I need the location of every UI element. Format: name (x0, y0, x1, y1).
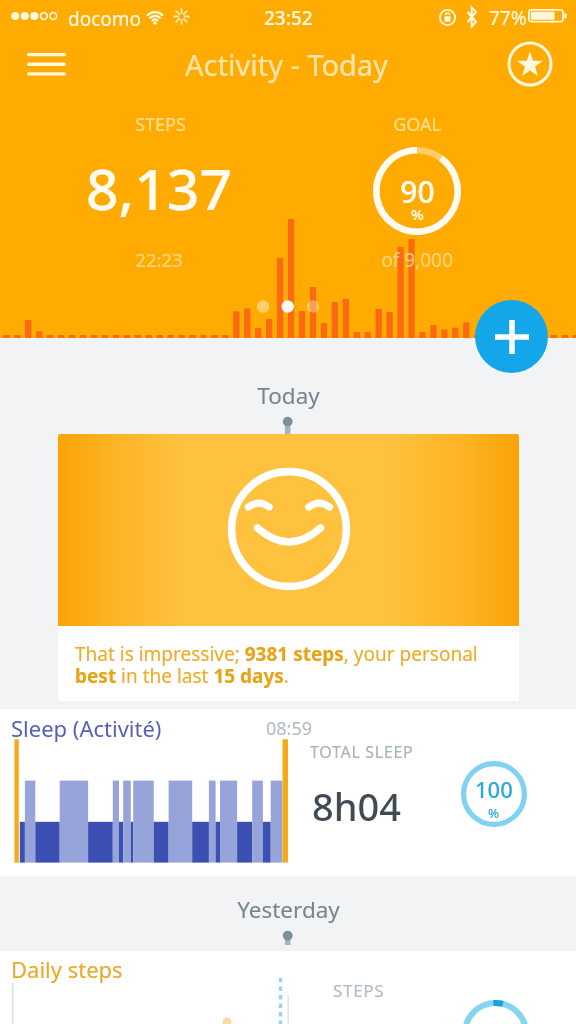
staticText: 08:59 (266, 716, 313, 741)
staticText: STEPS (135, 112, 186, 137)
staticText: 90 (400, 171, 435, 212)
staticText: TOTAL SLEEP (310, 741, 414, 763)
button[interactable]: Sleep (Activité) (0, 709, 576, 876)
staticText: % (488, 804, 500, 822)
staticText: 8,137 (86, 149, 232, 227)
staticText: 8h04 (312, 780, 402, 832)
button[interactable]: Menu (12, 43, 80, 85)
staticText: 100 (475, 774, 513, 804)
staticText: 77% (489, 5, 527, 31)
button[interactable]: Add (475, 300, 548, 373)
staticText: Today (257, 380, 320, 411)
staticText: % (411, 204, 424, 224)
staticText: 22:23 (135, 247, 183, 272)
staticText: Yesterday (237, 894, 340, 925)
staticText: Activity - Today (185, 45, 388, 84)
button[interactable]: Favorites (506, 40, 554, 88)
staticText: of 9,000 (381, 247, 453, 273)
button[interactable]: That is impressive; 9381 steps, your per… (58, 434, 519, 701)
staticText: docomo (68, 6, 142, 32)
button[interactable]: Daily steps (0, 951, 576, 1024)
staticText: That is impressive; 9381 steps, your per… (75, 641, 493, 689)
staticText: 23:52 (264, 5, 313, 31)
staticText: Sleep (Activité) (11, 713, 162, 743)
staticText: GOAL (393, 112, 441, 137)
staticText: STEPS (333, 979, 385, 1002)
staticText: Daily steps (11, 954, 123, 984)
